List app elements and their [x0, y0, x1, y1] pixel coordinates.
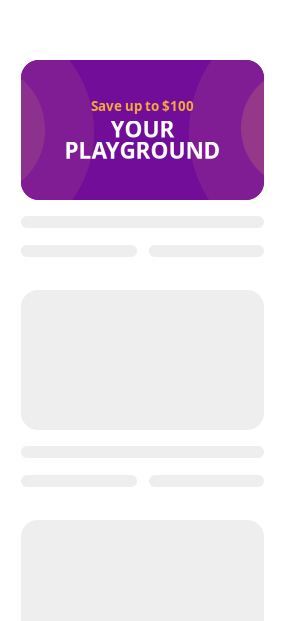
staticText: PLAYGROUND — [64, 135, 220, 165]
staticText: Save up to $100 — [91, 97, 194, 115]
staticText: YOUR — [110, 114, 174, 144]
button[interactable]: Save up to $100 — [21, 60, 264, 200]
